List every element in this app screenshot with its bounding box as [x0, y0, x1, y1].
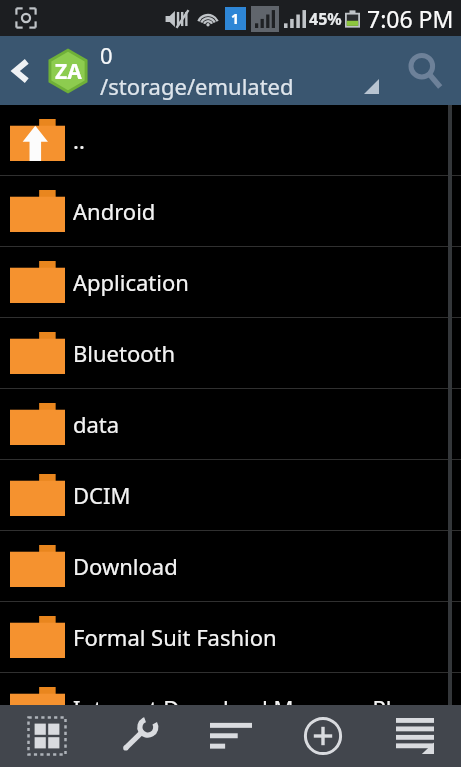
staticText: Bluetooth — [73, 338, 176, 368]
button[interactable]: Back — [0, 50, 42, 92]
staticText: data — [73, 409, 120, 439]
staticText: Formal Suit Fashion — [73, 622, 277, 652]
staticText: Android — [73, 196, 156, 226]
button[interactable]: Create new — [277, 705, 369, 767]
button[interactable]: Formal Suit Fashion — [0, 602, 461, 672]
button[interactable]: data — [0, 389, 461, 459]
staticText: DCIM — [73, 480, 131, 510]
button[interactable]: Bluetooth — [0, 318, 461, 388]
button[interactable]: Search — [397, 43, 453, 99]
button[interactable]: Download — [0, 531, 461, 601]
staticText: ZA — [55, 57, 82, 86]
staticText: /storage/emulated — [100, 71, 294, 101]
button[interactable]: .. — [0, 105, 461, 175]
staticText: Application — [73, 267, 189, 297]
button[interactable]: Menu — [369, 705, 461, 767]
staticText: Internet Download Manager Plus — [73, 693, 416, 723]
button[interactable]: Internet Download Manager Plus — [0, 673, 461, 743]
staticText: 1 — [231, 9, 240, 28]
button[interactable]: Application — [0, 247, 461, 317]
button[interactable]: DCIM — [0, 460, 461, 530]
staticText: 45% — [309, 8, 342, 30]
button[interactable]: Sort — [185, 705, 277, 767]
button[interactable]: Android — [0, 176, 461, 246]
button[interactable]: Tools — [93, 705, 185, 767]
staticText: 0 — [100, 40, 113, 70]
staticText: .. — [73, 125, 85, 155]
staticText: 7:06 PM — [367, 3, 454, 34]
button[interactable]: Select all — [0, 705, 93, 767]
staticText: Download — [73, 551, 178, 581]
